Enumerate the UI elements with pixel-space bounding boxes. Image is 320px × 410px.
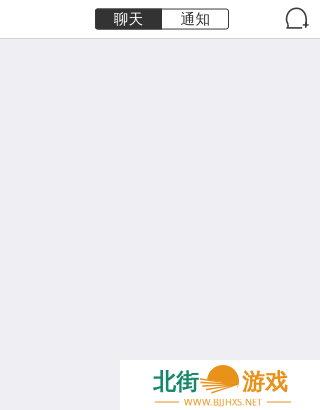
staticText: 聊天 bbox=[113, 10, 143, 28]
staticText: 北街 bbox=[153, 368, 199, 396]
button[interactable]: 通知 bbox=[162, 8, 229, 29]
staticText: WWW.BJJHXS.NET bbox=[184, 396, 262, 408]
staticText: 通知 bbox=[180, 10, 210, 28]
button[interactable]: New chat bbox=[282, 4, 312, 34]
staticText: 游戏 bbox=[242, 368, 288, 396]
button[interactable]: 聊天 bbox=[95, 8, 162, 29]
